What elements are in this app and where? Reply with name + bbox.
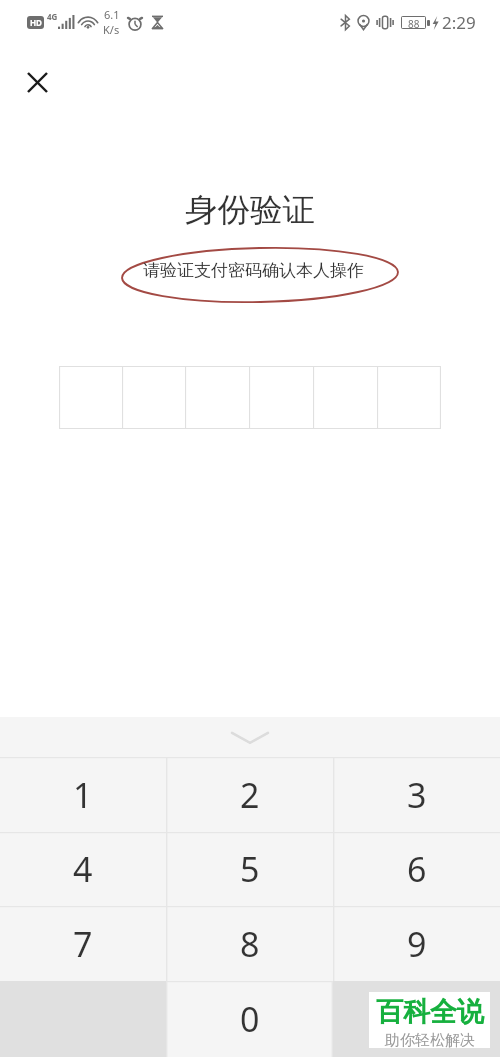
button[interactable]: 6: [333, 832, 500, 906]
staticText: 助你轻松解决: [385, 1031, 475, 1050]
staticText: 6.1: [104, 7, 120, 22]
button[interactable]: Password digit 1: [59, 366, 122, 429]
staticText: 2: [240, 772, 260, 818]
staticText: 百科全说: [376, 995, 484, 1029]
button[interactable]: 9: [333, 906, 500, 981]
staticText: 7: [73, 921, 93, 967]
staticText: 9: [407, 921, 427, 967]
button[interactable]: 4: [0, 832, 166, 906]
staticText: 身份验证: [185, 190, 315, 231]
staticText: 3: [407, 772, 427, 818]
button[interactable]: 0: [166, 981, 333, 1057]
button[interactable]: 8: [166, 906, 333, 981]
button[interactable]: Password digit 6: [377, 366, 441, 429]
staticText: 8: [240, 921, 260, 967]
button[interactable]: Delete: [333, 981, 500, 1057]
staticText: 4: [73, 846, 93, 892]
staticText: 2:29: [442, 11, 476, 34]
staticText: K/s: [103, 22, 120, 37]
button[interactable]: 3: [333, 757, 500, 832]
button[interactable]: Password digit 3: [185, 366, 249, 429]
button[interactable]: Password digit 5: [313, 366, 377, 429]
button[interactable]: Password digit 4: [249, 366, 313, 429]
button[interactable]: 7: [0, 906, 166, 981]
staticText: 6: [407, 846, 427, 892]
staticText: 0: [240, 996, 260, 1042]
button[interactable]: 2: [166, 757, 333, 832]
staticText: 1: [73, 772, 93, 818]
staticText: 请验证支付密码确认本人操作: [143, 260, 364, 281]
button[interactable]: 1: [0, 757, 166, 832]
staticText: 5: [240, 846, 260, 892]
button[interactable]: 5: [166, 832, 333, 906]
button[interactable]: Close: [13, 58, 61, 106]
staticText: 88: [408, 17, 420, 28]
button[interactable]: Password digit 2: [122, 366, 185, 429]
staticText: 4G: [47, 11, 58, 22]
staticText: HD: [30, 17, 42, 28]
